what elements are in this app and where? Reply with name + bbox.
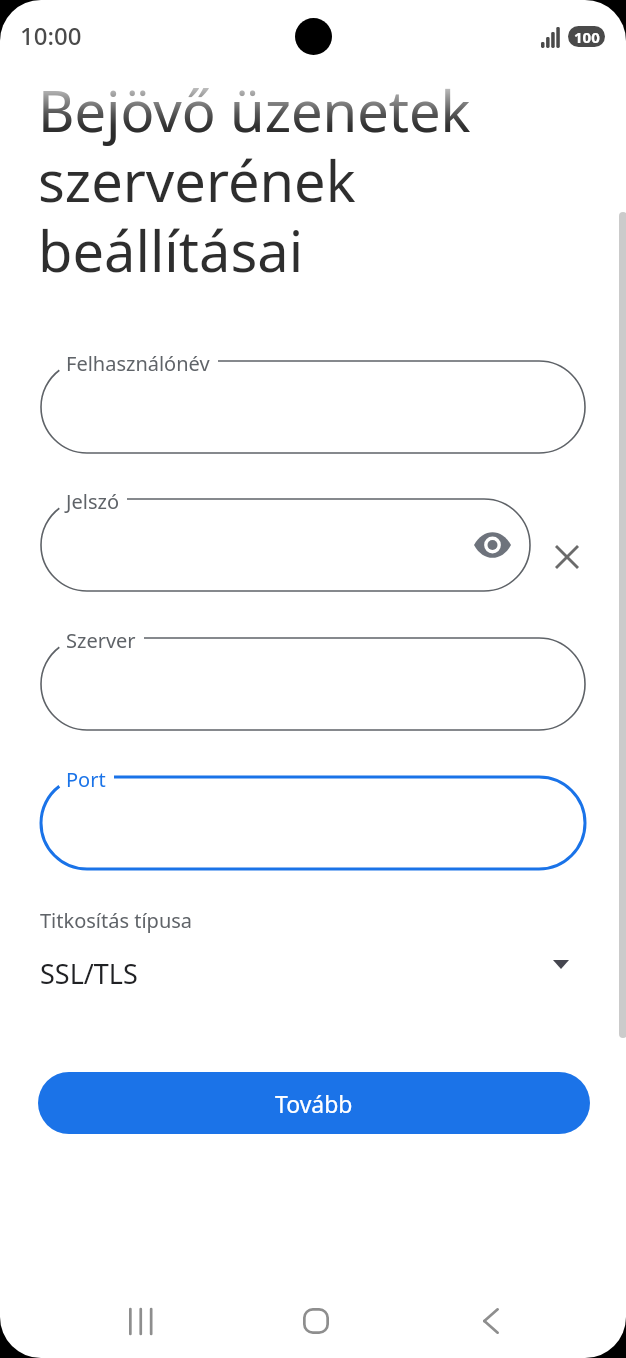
button[interactable]: Jelszó [41, 487, 530, 591]
button[interactable]: Felhasználónév [41, 349, 585, 453]
staticText: Felhasználónév [66, 350, 210, 377]
button[interactable]: Back [459, 1289, 523, 1353]
staticText: Tovább [275, 1088, 353, 1119]
button[interactable]: Recents [108, 1289, 172, 1353]
staticText: Port [66, 766, 106, 793]
button[interactable]: Clear [541, 531, 593, 583]
staticText: 100 [574, 27, 600, 47]
button[interactable]: Szerver [41, 626, 585, 730]
staticText: 10:00 [20, 19, 82, 52]
button[interactable]: Tovább [38, 1072, 590, 1134]
staticText: Titkosítás típusa [40, 907, 193, 934]
staticText: Bejövő üzenetek [38, 72, 471, 148]
button[interactable]: Show password [468, 521, 516, 569]
staticText: szerverének beállításai [38, 142, 356, 288]
button[interactable]: Home [284, 1289, 348, 1353]
staticText: SSL/TLS [40, 955, 138, 992]
staticText: Jelszó [66, 488, 119, 515]
staticText: Szerver [66, 627, 136, 654]
button[interactable]: Port [41, 765, 585, 869]
button[interactable]: Titkosítás típusa [38, 900, 590, 1000]
